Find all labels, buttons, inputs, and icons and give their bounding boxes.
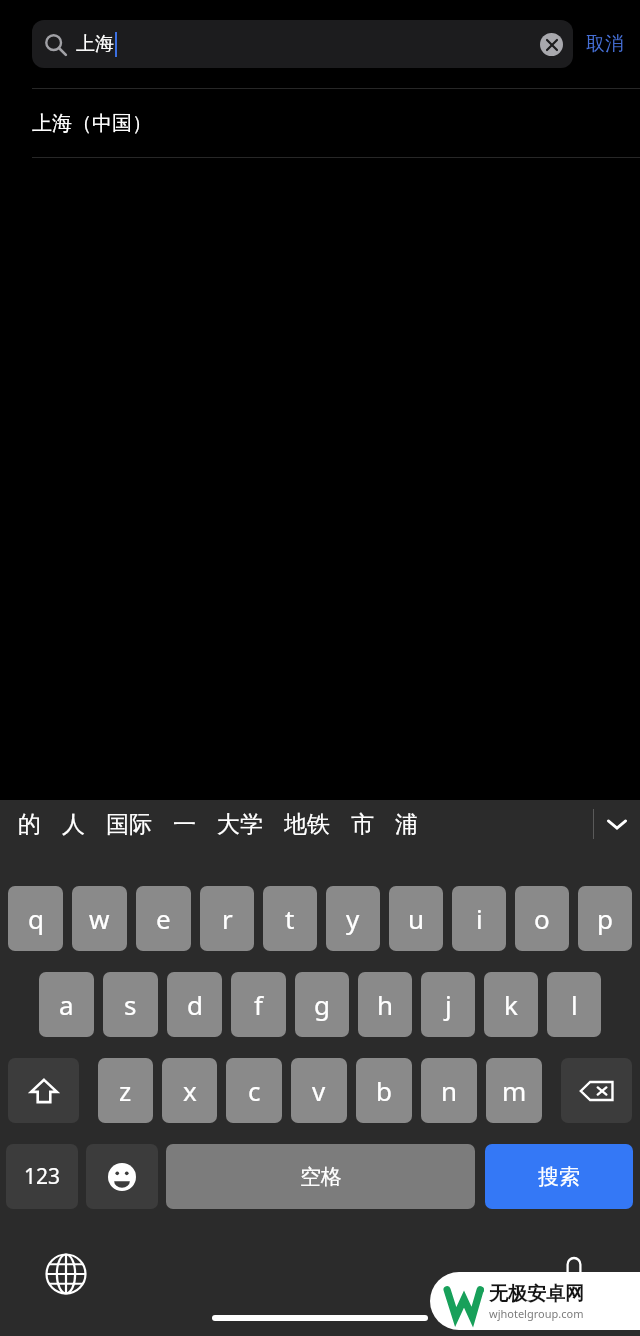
button[interactable]: 浦 — [374, 810, 418, 839]
button[interactable]: 大学 — [196, 810, 263, 839]
staticText: 123 — [24, 1162, 61, 1191]
button[interactable]: m — [486, 1058, 542, 1123]
staticText: 上海（中国） — [32, 111, 152, 136]
staticText: f — [254, 987, 263, 1022]
staticText: y — [346, 901, 360, 936]
staticText: l — [571, 987, 578, 1022]
staticText: z — [119, 1073, 132, 1108]
button[interactable]: j — [421, 972, 475, 1037]
staticText: k — [504, 987, 518, 1022]
staticText: v — [312, 1073, 326, 1108]
button[interactable]: h — [358, 972, 412, 1037]
staticText: 的 — [18, 810, 41, 839]
staticText: 浦 — [395, 810, 418, 839]
staticText: 搜索 — [538, 1164, 580, 1190]
button[interactable]: Clear text — [540, 33, 563, 56]
button[interactable]: Expand suggestions — [594, 800, 640, 848]
staticText: 空格 — [300, 1164, 342, 1190]
button[interactable]: i — [452, 886, 506, 951]
staticText: o — [534, 901, 550, 936]
staticText: e — [156, 901, 171, 936]
button[interactable]: 上海 — [32, 20, 573, 68]
button[interactable]: 空格 — [166, 1144, 475, 1209]
button[interactable]: Emoji — [86, 1144, 158, 1209]
button[interactable]: f — [231, 972, 286, 1037]
staticText: 上海 — [76, 32, 114, 56]
staticText: i — [476, 901, 483, 936]
staticText: j — [445, 987, 452, 1022]
button[interactable]: e — [136, 886, 191, 951]
staticText: r — [222, 901, 233, 936]
button[interactable]: 人 — [41, 810, 85, 839]
button[interactable]: r — [200, 886, 254, 951]
button[interactable]: s — [103, 972, 158, 1037]
staticText: w — [89, 901, 110, 936]
button[interactable]: a — [39, 972, 94, 1037]
staticText: n — [441, 1073, 458, 1108]
button[interactable]: 地铁 — [263, 810, 330, 839]
button[interactable]: Backspace — [561, 1058, 632, 1123]
button[interactable]: 取消 — [573, 32, 637, 56]
button[interactable]: q — [8, 886, 63, 951]
button[interactable]: Change keyboard language — [40, 1248, 92, 1300]
button[interactable]: 123 — [6, 1144, 78, 1209]
button[interactable]: u — [389, 886, 443, 951]
staticText: q — [28, 901, 44, 936]
staticText: 一 — [173, 810, 196, 839]
button[interactable]: z — [98, 1058, 153, 1123]
button[interactable]: c — [226, 1058, 282, 1123]
staticText: wjhotelgroup.com — [489, 1306, 584, 1321]
staticText: c — [248, 1073, 261, 1108]
button[interactable]: 一 — [152, 810, 196, 839]
button[interactable]: t — [263, 886, 317, 951]
button[interactable]: 上海（中国） — [0, 89, 640, 157]
button[interactable]: Shift — [8, 1058, 79, 1123]
button[interactable]: o — [515, 886, 569, 951]
staticText: 取消 — [586, 32, 624, 56]
button[interactable]: l — [547, 972, 601, 1037]
button[interactable]: 的 — [0, 810, 41, 839]
staticText: t — [285, 901, 295, 936]
button[interactable]: 国际 — [85, 810, 152, 839]
staticText: a — [59, 987, 74, 1022]
button[interactable]: x — [162, 1058, 217, 1123]
button[interactable]: w — [72, 886, 127, 951]
staticText: u — [408, 901, 425, 936]
staticText: s — [124, 987, 137, 1022]
staticText: m — [502, 1073, 527, 1108]
staticText: 大学 — [217, 810, 263, 839]
button[interactable]: v — [291, 1058, 347, 1123]
staticText: g — [314, 987, 330, 1022]
staticText: 地铁 — [284, 810, 330, 839]
staticText: 无极安卓网 — [489, 1282, 584, 1306]
staticText: 人 — [62, 810, 85, 839]
button[interactable]: b — [356, 1058, 412, 1123]
button[interactable]: y — [326, 886, 380, 951]
button[interactable]: g — [295, 972, 349, 1037]
button[interactable]: k — [484, 972, 538, 1037]
staticText: 市 — [351, 810, 374, 839]
staticText: d — [187, 987, 203, 1022]
button[interactable]: d — [167, 972, 222, 1037]
button[interactable]: 市 — [330, 810, 374, 839]
staticText: b — [376, 1073, 392, 1108]
staticText: h — [377, 987, 394, 1022]
staticText: x — [183, 1073, 197, 1108]
staticText: 国际 — [106, 810, 152, 839]
button[interactable]: Dictation — [548, 1248, 600, 1300]
staticText: p — [597, 901, 613, 936]
button[interactable]: n — [421, 1058, 477, 1123]
button[interactable]: 搜索 — [485, 1144, 633, 1209]
button[interactable]: p — [578, 886, 632, 951]
